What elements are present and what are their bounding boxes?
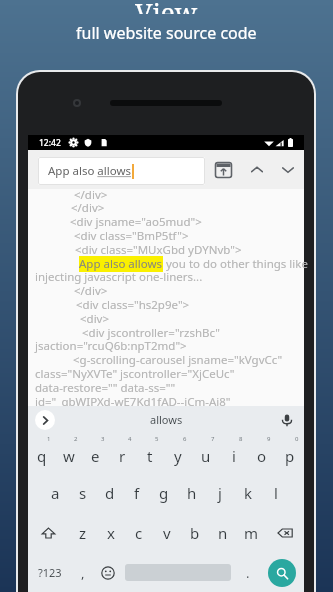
staticText: 12:42 [39,137,61,149]
button[interactable]: x [97,513,125,553]
button[interactable]: k [234,473,262,513]
staticText: b [190,523,200,543]
button[interactable]: 3 [82,433,109,473]
button[interactable]: , [71,553,95,592]
staticText: 3 [101,435,105,443]
button[interactable]: Space [120,553,235,592]
staticText: </div> [74,187,108,203]
button[interactable]: v [153,513,181,553]
button[interactable]: s [69,473,96,513]
button[interactable]: 2 [55,433,82,473]
staticText: n [218,523,228,543]
staticText: full website source code [76,22,257,44]
staticText: ?123 [38,565,62,580]
button[interactable]: j [206,473,234,513]
button[interactable]: 6 [164,433,192,473]
staticText: 7 [211,435,215,443]
button[interactable]: allows [62,406,270,433]
button[interactable]: Find next [275,157,301,183]
button[interactable]: l [262,473,290,513]
staticText: App also allows [79,256,163,272]
staticText: m [244,523,259,543]
staticText: f [134,483,140,503]
staticText: l [274,483,278,503]
staticText: t [147,446,153,466]
staticText: <div jsname="ao5mud"> [70,214,202,230]
button[interactable]: 7 [192,433,220,473]
staticText: <div jscontroller="rzshBc" [82,325,220,341]
staticText: 4 [128,435,132,443]
staticText: id="_qbWIPXd-wE7Kd1fAD--iCm-Ai8" [35,394,231,410]
button[interactable]: 8 [220,433,248,473]
button[interactable]: Search [260,553,304,592]
staticText: w [63,446,75,466]
staticText: 9 [267,435,271,443]
staticText: s [79,483,87,503]
button[interactable]: 5 [136,433,164,473]
button[interactable]: n [209,513,237,553]
staticText: o [257,446,267,466]
staticText: data-restore="" data-ss="" [35,380,176,396]
staticText: g [159,483,169,503]
button[interactable]: h [178,473,206,513]
staticText: 0 [295,435,299,443]
staticText: 2 [74,435,78,443]
button[interactable]: m [237,513,265,553]
button[interactable]: Backspace [265,513,304,553]
staticText: jsaction="rcuQ6b:npT2md"> [35,338,187,354]
button[interactable]: Shift [28,513,68,553]
staticText: View [135,0,198,14]
staticText: 8 [239,435,243,443]
staticText: 6 [183,435,187,443]
button[interactable]: More suggestions [28,406,62,433]
button[interactable]: Emoji [95,553,120,592]
staticText: injecting javascript one-liners... [35,269,203,285]
button[interactable]: ?123 [28,553,71,592]
staticText: class="NyXVTe" jscontroller="XjCeUc" [35,366,235,382]
staticText: d [105,483,115,503]
button[interactable]: Open page in new tab [210,157,236,183]
staticText: <div class="hs2p9e"> [76,297,190,313]
staticText: <div class="BmP5tf"> [74,228,189,244]
button[interactable]: 1 [28,433,55,473]
staticText: a [51,483,60,503]
button[interactable]: 0 [276,433,304,473]
staticText: </div> [74,283,108,299]
staticText: App also allows [48,163,132,179]
button[interactable]: z [68,513,97,553]
staticText: q [37,446,47,466]
staticText: <div> [80,311,110,327]
staticText: <g-scrolling-carousel jsname="kVgvCc" [73,352,283,368]
button[interactable]: . [235,553,260,592]
staticText: c [135,523,143,543]
staticText: e [91,446,100,466]
button[interactable]: b [181,513,209,553]
staticText: p [285,446,295,466]
button[interactable]: 4 [109,433,136,473]
button[interactable]: Find previous [244,157,270,183]
staticText: z [79,523,87,543]
staticText: r [119,446,126,466]
staticText: 5 [155,435,159,443]
staticText: allows [150,412,183,427]
staticText: </div> [71,200,105,216]
staticText: <div class="MUxGbd yDYNvb"> [75,242,242,258]
staticText: y [174,446,182,466]
staticText: u [201,446,211,466]
button[interactable]: f [123,473,150,513]
staticText: h [187,483,197,503]
button[interactable]: g [150,473,178,513]
button[interactable]: d [96,473,123,513]
button[interactable]: c [125,513,153,553]
staticText: i [232,446,236,466]
staticText: 1 [47,435,51,443]
staticText: j [218,483,222,503]
staticText: you to do other things like [163,256,308,272]
staticText: v [163,523,171,543]
button[interactable]: a [42,473,69,513]
staticText: . [246,564,250,582]
staticText: x [107,523,115,543]
button[interactable]: App also allows [38,157,205,185]
button[interactable]: Voice input [270,406,304,433]
button[interactable]: 9 [248,433,276,473]
